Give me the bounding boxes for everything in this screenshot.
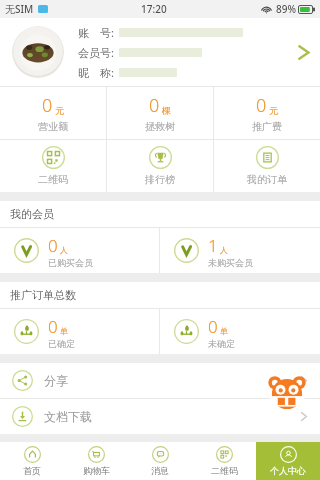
staticText: 我的订单: [247, 173, 287, 186]
button[interactable]: 0: [160, 309, 320, 354]
button[interactable]: 0: [0, 228, 159, 273]
staticText: 0: [48, 234, 58, 257]
staticText: 二维码: [211, 465, 238, 476]
staticText: 拯救树: [145, 120, 175, 133]
button[interactable]: 个人中心: [256, 442, 320, 480]
staticText: 已确定: [48, 338, 75, 349]
staticText: 账 号:: [78, 25, 114, 40]
staticText: 单: [60, 326, 68, 336]
staticText: 消息: [151, 465, 169, 476]
staticText: 购物车: [83, 465, 110, 476]
staticText: 棵: [162, 105, 171, 116]
staticText: 0: [149, 93, 160, 118]
button[interactable]: 1: [160, 228, 320, 273]
staticText: 0: [48, 315, 58, 338]
button[interactable]: 我的订单: [214, 140, 320, 192]
staticText: 首页: [23, 465, 41, 476]
staticText: 我的会员: [10, 207, 54, 221]
button[interactable]: 分享: [0, 363, 320, 398]
staticText: 元: [55, 105, 64, 116]
staticText: 0: [42, 93, 53, 118]
staticText: 人: [60, 245, 68, 255]
button[interactable]: 0: [214, 87, 320, 139]
button[interactable]: 账 号:: [0, 18, 320, 86]
staticText: 推广订单总数: [10, 288, 76, 302]
staticText: 推广费: [252, 120, 282, 133]
staticText: 已购买会员: [48, 257, 93, 268]
staticText: 0: [256, 93, 267, 118]
staticText: 昵 称:: [78, 65, 114, 80]
staticText: 营业额: [38, 120, 68, 133]
staticText: 会员号:: [78, 45, 114, 60]
staticText: 未购买会员: [208, 257, 253, 268]
staticText: 17:20: [141, 2, 167, 16]
staticText: 89%: [276, 2, 296, 16]
button[interactable]: 二维码: [0, 140, 106, 192]
staticText: 分享: [44, 373, 68, 388]
button[interactable]: 0: [107, 87, 213, 139]
staticText: 个人中心: [270, 465, 306, 476]
staticText: 人: [220, 245, 228, 255]
staticText: 排行榜: [145, 173, 175, 186]
staticText: 无SIM: [5, 2, 34, 16]
staticText: 未确定: [208, 338, 235, 349]
button[interactable]: 0: [0, 309, 159, 354]
staticText: 元: [269, 105, 278, 116]
button[interactable]: 客服: [266, 373, 308, 415]
staticText: 单: [220, 326, 228, 336]
button[interactable]: 排行榜: [107, 140, 213, 192]
staticText: 1: [208, 234, 218, 257]
staticText: 文档下载: [44, 409, 92, 424]
button[interactable]: 首页: [0, 442, 64, 480]
button[interactable]: 文档下载: [0, 399, 320, 434]
button[interactable]: 购物车: [64, 442, 128, 480]
staticText: 二维码: [38, 173, 68, 186]
button[interactable]: 二维码: [192, 442, 256, 480]
staticText: 0: [208, 315, 218, 338]
button[interactable]: 0: [0, 87, 106, 139]
button[interactable]: 消息: [128, 442, 192, 480]
